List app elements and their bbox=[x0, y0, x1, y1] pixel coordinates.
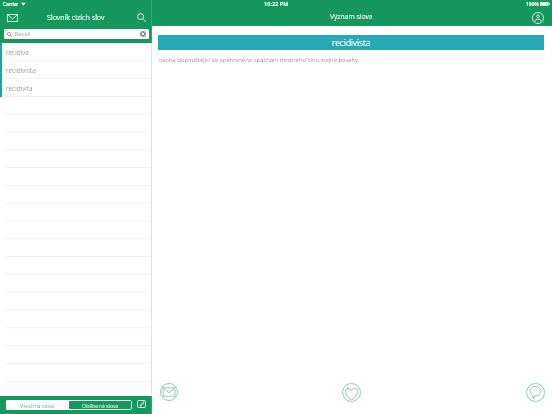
button[interactable]: recidivista bbox=[158, 35, 544, 50]
button[interactable]: Oblíbená slova bbox=[69, 400, 132, 410]
button[interactable]: Recid bbox=[7, 29, 146, 39]
staticText: recidiva bbox=[6, 48, 29, 57]
staticText: Recid bbox=[15, 30, 30, 38]
staticText: osoba dopouštějící se opětovného spáchán… bbox=[159, 56, 358, 64]
button[interactable]: recidiva bbox=[0, 43, 152, 61]
button[interactable]: Všechna slova bbox=[6, 400, 69, 410]
button[interactable]: Random word bbox=[137, 400, 146, 408]
staticText: recidivita bbox=[6, 84, 33, 93]
button[interactable]: Search bbox=[134, 10, 149, 25]
staticText: Oblíbená slova bbox=[82, 402, 119, 409]
button[interactable]: Mail bbox=[5, 10, 20, 25]
button[interactable]: Favorite bbox=[341, 382, 361, 402]
button[interactable]: recidivista bbox=[0, 61, 152, 79]
button[interactable]: Account bbox=[531, 11, 544, 24]
staticText: Význam slova bbox=[330, 12, 373, 22]
button[interactable]: Mail bbox=[159, 382, 179, 402]
button[interactable]: Comment bbox=[525, 382, 545, 402]
staticText: Všechna slova bbox=[20, 402, 55, 409]
button[interactable]: recidivita bbox=[0, 79, 152, 97]
staticText: recidivista bbox=[6, 66, 36, 75]
staticText: Slovník cizích slov bbox=[47, 12, 105, 22]
staticText: 10:22 PM bbox=[264, 0, 289, 8]
staticText: recidivista bbox=[332, 37, 371, 49]
staticText: 100% bbox=[526, 1, 539, 8]
staticText: Carrier bbox=[3, 1, 19, 7]
